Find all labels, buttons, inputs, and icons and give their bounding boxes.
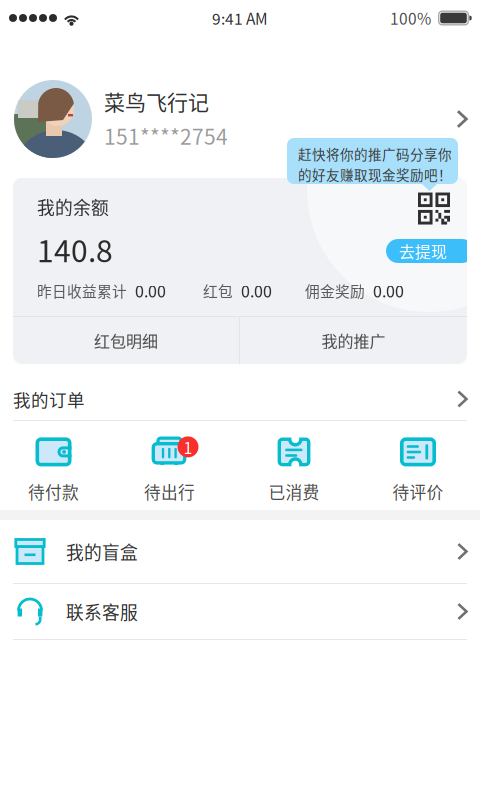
button[interactable]: 菜鸟飞行记 (0, 80, 480, 158)
staticText: 联系客服 (66, 599, 138, 624)
button[interactable]: 我的推广 (240, 317, 467, 364)
staticText: 100% (390, 7, 431, 29)
staticText: 151****2754 (104, 120, 228, 151)
button[interactable]: 我的二维码 (418, 192, 450, 224)
staticText: 的好友赚取现金奖励吧！ (298, 165, 452, 184)
staticText: 菜鸟飞行记 (104, 86, 209, 116)
staticText: 0.00 (135, 279, 166, 302)
staticText: 待出行 (144, 479, 195, 504)
staticText: 红包 (203, 280, 233, 301)
button[interactable]: 我的订单 (0, 378, 480, 421)
staticText: 已消费 (268, 479, 319, 504)
staticText: 0.00 (241, 279, 272, 302)
staticText: 赶快将你的推广码分享你 (298, 144, 452, 164)
staticText: 我的推广 (321, 329, 385, 352)
staticText: 我的盲盒 (66, 539, 138, 564)
button[interactable]: 联系客服 (0, 584, 480, 640)
staticText: 去提现 (399, 239, 447, 263)
staticText: 9:41 AM (212, 7, 268, 29)
staticText: 佣金奖励 (305, 280, 365, 301)
button[interactable]: 红包明细 (13, 317, 239, 364)
button[interactable]: 1 (107, 421, 232, 510)
staticText: 我的余额 (37, 194, 109, 219)
staticText: 待付款 (28, 479, 79, 504)
button[interactable]: 去提现 (386, 239, 474, 263)
staticText: 待评价 (392, 479, 443, 504)
staticText: 1 (183, 435, 192, 458)
button[interactable]: 已消费 (232, 421, 356, 510)
button[interactable]: 我的盲盒 (0, 520, 480, 584)
staticText: 0.00 (373, 279, 404, 302)
staticText: 我的订单 (13, 386, 85, 412)
button[interactable]: 待评价 (356, 421, 480, 510)
staticText: 红包明细 (94, 329, 158, 352)
staticText: 昨日收益累计 (37, 280, 127, 301)
staticText: 140.8 (37, 227, 113, 271)
button[interactable]: 待付款 (0, 421, 107, 510)
